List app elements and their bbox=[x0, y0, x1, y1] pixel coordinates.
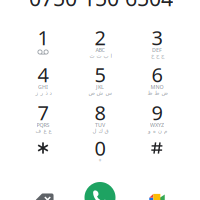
button[interactable]: Video call bbox=[146, 189, 170, 200]
staticText: ABC bbox=[95, 46, 104, 54]
staticText: ض ط ظ bbox=[147, 90, 167, 96]
button[interactable]: 5 bbox=[73, 65, 127, 101]
staticText: PQRS bbox=[36, 121, 49, 129]
staticText: 7 bbox=[37, 99, 48, 126]
button[interactable]: 2 bbox=[73, 28, 127, 64]
staticText: + bbox=[98, 157, 101, 164]
button[interactable]: 3 bbox=[130, 28, 184, 64]
staticText: ا ب ت ث bbox=[89, 53, 111, 59]
staticText: 1 bbox=[37, 24, 48, 51]
button[interactable]: 1 voicemail bbox=[16, 28, 70, 64]
staticText: GHI bbox=[38, 83, 48, 91]
staticText: ع غ ف bbox=[35, 128, 51, 134]
staticText: ق ك ل bbox=[92, 128, 108, 134]
staticText: MNO bbox=[150, 83, 163, 91]
staticText: 0750 150 6504 bbox=[29, 0, 173, 12]
staticText: د ذ ر ز bbox=[35, 90, 51, 96]
button[interactable]: Star bbox=[16, 139, 70, 175]
button[interactable]: Pound bbox=[130, 139, 184, 175]
staticText: DEF bbox=[152, 46, 162, 54]
staticText: 6 bbox=[151, 61, 162, 88]
button[interactable]: 6 bbox=[130, 65, 184, 101]
staticText: 2 bbox=[94, 24, 105, 51]
staticText: 3 bbox=[151, 24, 162, 51]
staticText: م ن ه و bbox=[147, 128, 166, 134]
staticText: WXYZ bbox=[150, 121, 164, 129]
staticText: ج ح خ bbox=[150, 53, 163, 59]
button[interactable]: 4 bbox=[16, 65, 70, 101]
staticText: س ش ص bbox=[88, 90, 112, 96]
button[interactable]: 9 bbox=[130, 103, 184, 139]
staticText: 5 bbox=[94, 61, 105, 88]
button[interactable]: Delete bbox=[32, 189, 58, 200]
staticText: 4 bbox=[37, 61, 48, 88]
button[interactable]: 8 bbox=[73, 103, 127, 139]
button[interactable]: Call bbox=[84, 182, 115, 200]
staticText: 9 bbox=[151, 99, 162, 126]
staticText: JKL bbox=[96, 83, 104, 91]
button[interactable]: 7 bbox=[16, 103, 70, 139]
staticText: 8 bbox=[94, 99, 105, 126]
staticText: 0 bbox=[94, 135, 105, 161]
staticText: TUV bbox=[95, 121, 105, 129]
button[interactable]: 0 bbox=[73, 139, 127, 175]
